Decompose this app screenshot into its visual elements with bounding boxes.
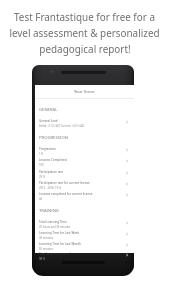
staticText: 100 [39,163,44,167]
staticText: 98 % [39,257,46,261]
button[interactable]: Lessons Completed [35,156,134,167]
staticText: Best Lesson answered [39,252,71,256]
staticText: Participation rate for current license [39,181,90,185]
button[interactable]: Participation rate [35,168,134,179]
staticText: 2013 - 2016: 19 % [39,186,61,190]
button[interactable]: Total Learning Time [35,218,134,229]
button[interactable]: Progression [35,145,134,156]
button[interactable]: General Level [35,117,134,128]
button[interactable]: Lessons completed for current license [35,190,134,201]
staticText: 50 minutes [39,247,54,251]
staticText: Your Score [74,89,95,95]
staticText: Participation rate [39,170,64,174]
staticText: 46 [39,197,43,201]
staticText: level assessment & personalized [9,26,160,39]
button[interactable]: Participation rate for current license [35,179,134,190]
staticText: pedagogical report! [39,42,131,55]
staticText: Progression [39,147,56,151]
staticText: 29 % [39,175,46,179]
staticText: GENERAL [39,107,58,113]
staticText: General Level [39,119,59,123]
staticText: TRAINING [39,208,59,214]
button[interactable]: Best Lesson answered [35,250,134,261]
staticText: Learning Time for Last Month [39,242,81,246]
staticText: Test Frantastique for free for a [14,10,155,23]
staticText: Lessons completed for current license [39,192,93,196]
staticText: 20 hours and 30 minutes [39,225,71,229]
staticText: Total Learning Time [39,220,67,224]
staticText: Lessons Completed [39,158,67,162]
staticText: Learning Time for Last Week [39,231,80,235]
staticText: PROGRESSION [39,135,68,141]
staticText: 1.8 [39,152,43,156]
button[interactable]: Learning Time for Last Week [35,229,134,240]
staticText: 30 minutes [39,236,54,240]
staticText: Initial: <1.0 (<A1) Current: <2.0 (<A2) [39,124,85,128]
button[interactable]: Learning Time for Last Month [35,240,134,251]
